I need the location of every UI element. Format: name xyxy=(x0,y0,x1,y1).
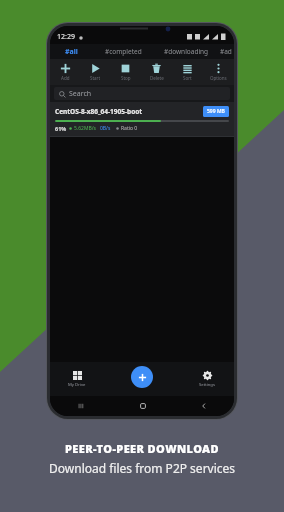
staticText: 5.62MB/s xyxy=(74,125,96,132)
button[interactable]: Recents xyxy=(50,396,112,416)
staticText: Delete xyxy=(150,75,164,81)
button[interactable]: #completed xyxy=(92,44,154,59)
button[interactable]: Start xyxy=(80,59,110,85)
button[interactable]: #downloading xyxy=(154,44,218,59)
button[interactable]: Home xyxy=(112,396,173,416)
button[interactable]: Add download xyxy=(131,366,153,388)
staticText: Download files from P2P services xyxy=(49,460,236,476)
staticText: 61% xyxy=(55,125,67,132)
staticText: #completed xyxy=(105,47,142,56)
staticText: CentOS-8-x86_64-1905-boot xyxy=(55,107,203,116)
staticText: #all xyxy=(65,47,78,57)
button[interactable]: Sort xyxy=(172,59,203,85)
staticText: 12:29 xyxy=(57,32,75,42)
staticText: 599 MB xyxy=(207,108,225,115)
staticText: My Drive xyxy=(68,382,86,388)
button[interactable]: CentOS-8-x86_64-1905-boot xyxy=(50,102,234,136)
button[interactable]: My Drive xyxy=(60,362,94,396)
button[interactable]: Settings xyxy=(190,362,224,396)
button[interactable]: Stop xyxy=(110,59,141,85)
staticText: Sort xyxy=(183,75,192,81)
staticText: Add xyxy=(61,75,70,81)
staticText: Start xyxy=(90,75,101,81)
button[interactable]: Options xyxy=(203,59,234,85)
staticText: Search xyxy=(69,89,92,99)
button[interactable]: #all xyxy=(50,44,92,59)
staticText: Stop xyxy=(121,75,131,81)
button[interactable]: Add xyxy=(50,59,80,85)
staticText: 0B/s xyxy=(100,125,111,132)
staticText: PEER-TO-PEER DOWNLOAD xyxy=(65,441,219,456)
button[interactable]: #ad xyxy=(218,44,234,59)
staticText: Options xyxy=(210,75,227,81)
staticText: #downloading xyxy=(164,47,209,56)
button[interactable]: Delete xyxy=(141,59,172,85)
staticText: Settings xyxy=(199,382,215,388)
button[interactable]: Search xyxy=(54,87,230,100)
button[interactable]: Back xyxy=(173,396,234,416)
staticText: #ad xyxy=(220,47,232,56)
staticText: Ratio 0 xyxy=(121,125,138,132)
